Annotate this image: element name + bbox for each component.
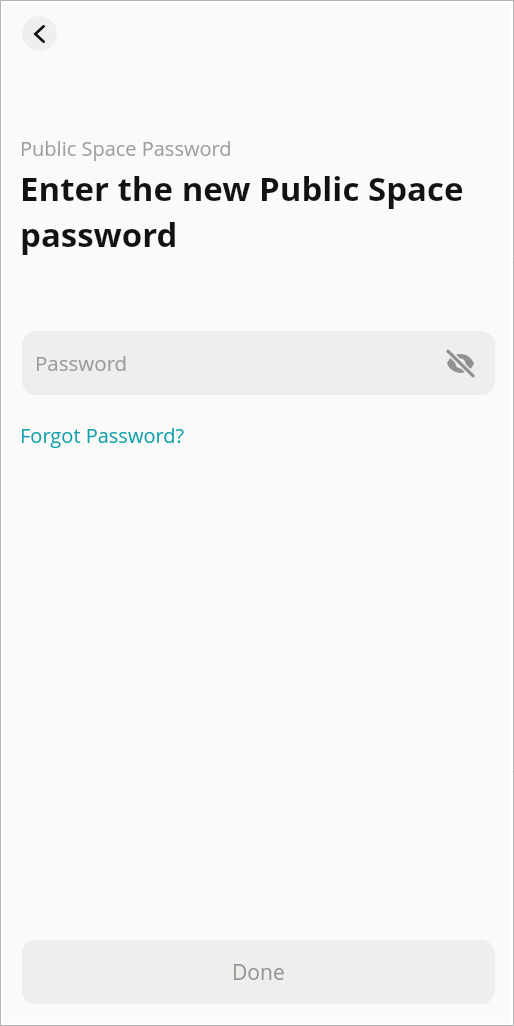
button[interactable]: Password [22, 331, 495, 395]
staticText: Enter the new Public Space password [20, 166, 494, 256]
button[interactable]: Forgot Password? [20, 414, 185, 457]
staticText: Password [35, 349, 128, 377]
button[interactable]: Show password [445, 348, 475, 378]
button[interactable]: Back [22, 16, 57, 51]
staticText: Forgot Password? [20, 422, 185, 449]
staticText: Public Space Password [20, 135, 232, 162]
staticText: Done [232, 958, 285, 987]
button[interactable]: Done [22, 940, 495, 1004]
